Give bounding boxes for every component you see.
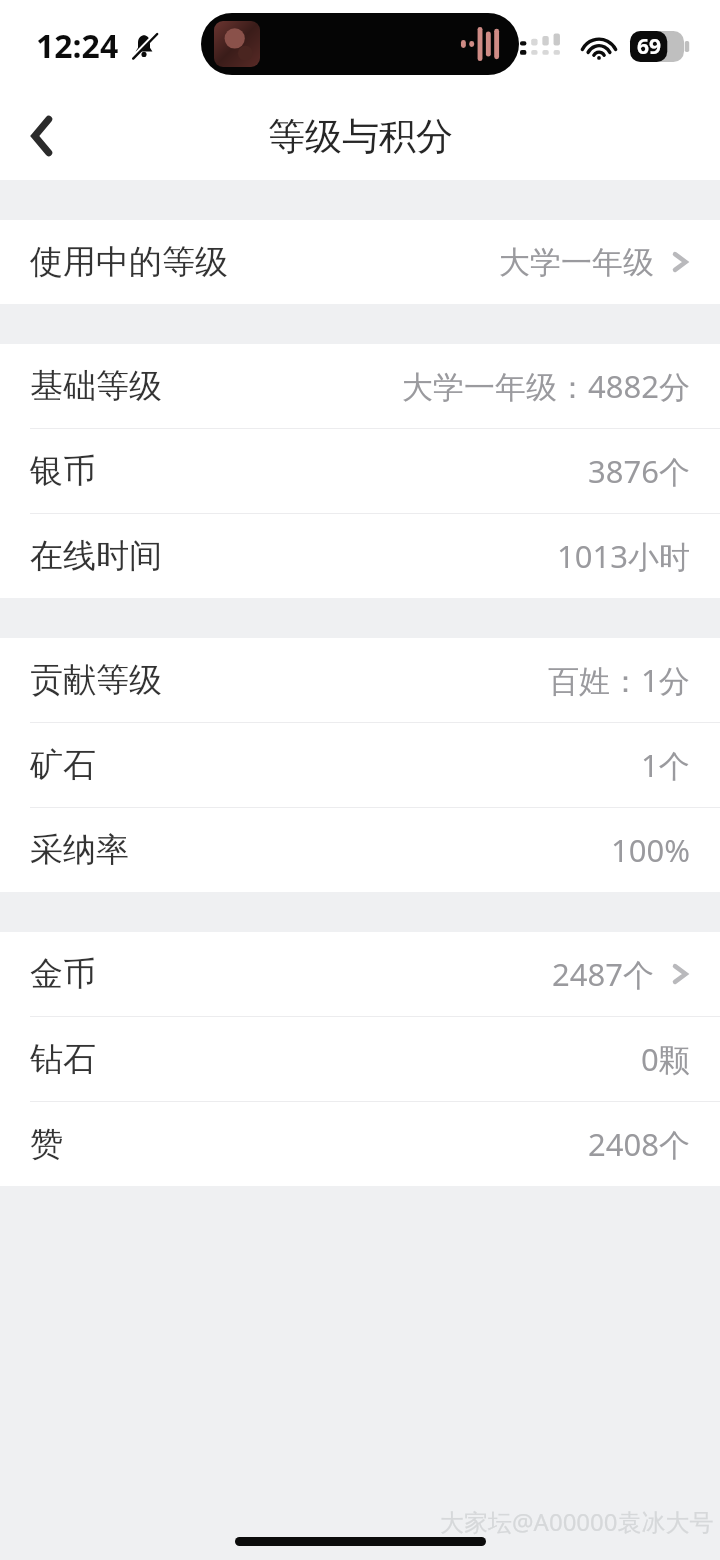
button[interactable]: 赞 — [0, 1102, 720, 1186]
staticText: 1个 — [641, 744, 690, 786]
staticText: 在线时间 — [30, 535, 162, 577]
staticText: 采纳率 — [30, 829, 129, 871]
staticText: 2408个 — [588, 1123, 690, 1165]
button[interactable]: 基础等级 — [0, 344, 720, 428]
staticText: 钻石 — [30, 1038, 96, 1080]
staticText: 等级与积分 — [268, 113, 453, 160]
button[interactable]: 矿石 — [0, 723, 720, 807]
staticText: 矿石 — [30, 744, 96, 786]
staticText: 1013小时 — [557, 535, 690, 577]
button[interactable]: 采纳率 — [0, 808, 720, 892]
staticText: 12:24 — [36, 24, 119, 68]
staticText: 赞 — [30, 1123, 63, 1165]
staticText: 基础等级 — [30, 365, 162, 407]
staticText: 金币 — [30, 953, 96, 995]
staticText: 大学一年级：4882分 — [402, 365, 690, 407]
staticText: 2487个 — [552, 953, 654, 995]
staticText: 银币 — [30, 450, 96, 492]
button[interactable]: Back — [14, 108, 70, 164]
staticText: 大学一年级 — [499, 243, 654, 282]
other: Home — [235, 1537, 486, 1546]
button[interactable]: 在线时间 — [0, 514, 720, 598]
button[interactable]: 使用中的等级 — [0, 220, 720, 304]
staticText: 69 — [637, 32, 662, 61]
staticText: 大家坛@A00000袁冰大号 — [440, 1505, 714, 1538]
staticText: 百姓：1分 — [548, 659, 690, 701]
button[interactable]: 钻石 — [0, 1017, 720, 1101]
staticText: 使用中的等级 — [30, 241, 228, 283]
staticText: 100% — [611, 829, 690, 871]
button[interactable]: 金币 — [0, 932, 720, 1016]
staticText: 0颗 — [641, 1038, 690, 1080]
staticText: 3876个 — [588, 450, 690, 492]
button[interactable]: 银币 — [0, 429, 720, 513]
staticText: 贡献等级 — [30, 659, 162, 701]
button[interactable]: 贡献等级 — [0, 638, 720, 722]
